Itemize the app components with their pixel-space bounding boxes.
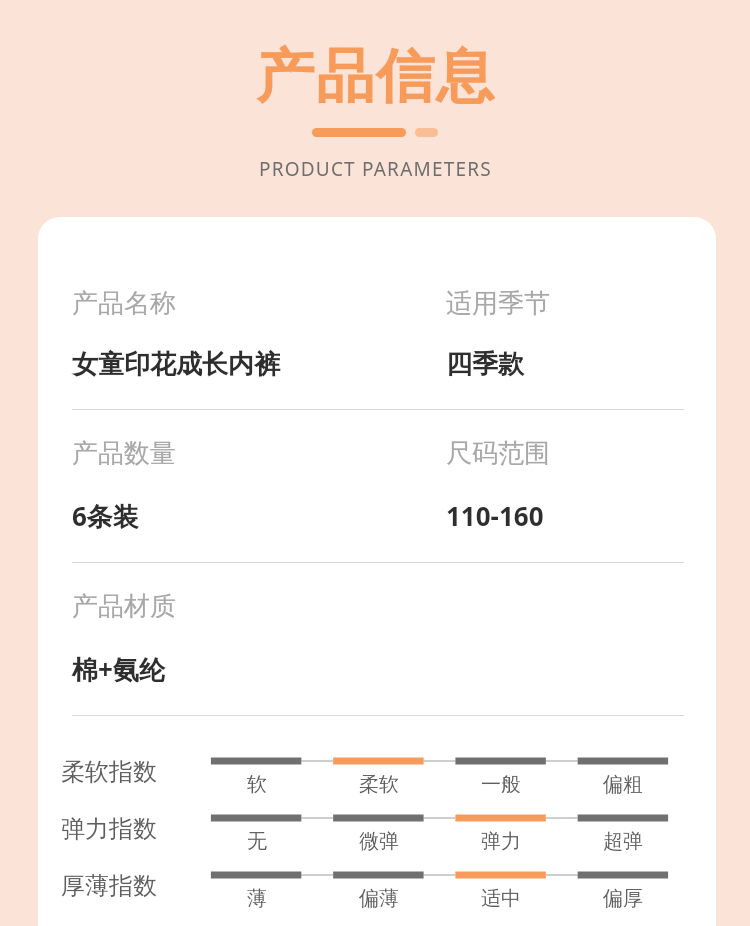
staticText: 弹力 (481, 829, 521, 854)
staticText: 薄 (247, 886, 267, 911)
other: 弹力指数 (195, 810, 684, 826)
button[interactable]: 弹力指数 (38, 810, 716, 854)
staticText: 偏薄 (359, 886, 399, 911)
staticText: 偏厚 (603, 886, 643, 911)
staticText: PRODUCT PARAMETERS (259, 156, 492, 182)
staticText: 产品信息 (255, 40, 495, 108)
staticText: 6条装 (72, 498, 139, 534)
button[interactable]: 柔软指数 (38, 753, 716, 797)
button[interactable]: 产品材质 (38, 590, 716, 687)
staticText: 偏粗 (603, 772, 643, 797)
staticText: 女童印花成长内裤 (72, 348, 280, 381)
staticText: 适中 (481, 886, 521, 911)
staticText: 棉+氨纶 (72, 651, 165, 687)
staticText: 一般 (481, 772, 521, 797)
staticText: 弹力指数 (61, 814, 157, 844)
staticText: 四季款 (446, 348, 524, 381)
staticText: 110-160 (446, 498, 544, 533)
staticText: 厚薄指数 (61, 871, 157, 901)
button[interactable]: 厚薄指数 (38, 867, 716, 911)
staticText: 无 (247, 829, 267, 854)
other: 柔软指数 (195, 753, 684, 769)
staticText: 柔软 (359, 772, 399, 797)
staticText: 微弹 (359, 829, 399, 854)
staticText: 软 (247, 772, 267, 797)
staticText: 适用季节 (446, 287, 550, 320)
button[interactable]: 产品名称 (38, 287, 716, 381)
other: 厚薄指数 (195, 867, 684, 883)
staticText: 尺码范围 (446, 437, 550, 470)
staticText: 产品名称 (72, 287, 176, 320)
staticText: 柔软指数 (61, 757, 157, 787)
staticText: 超弹 (603, 829, 643, 854)
staticText: 产品数量 (72, 437, 176, 470)
staticText: 产品材质 (72, 590, 176, 623)
button[interactable]: 产品数量 (38, 437, 716, 534)
